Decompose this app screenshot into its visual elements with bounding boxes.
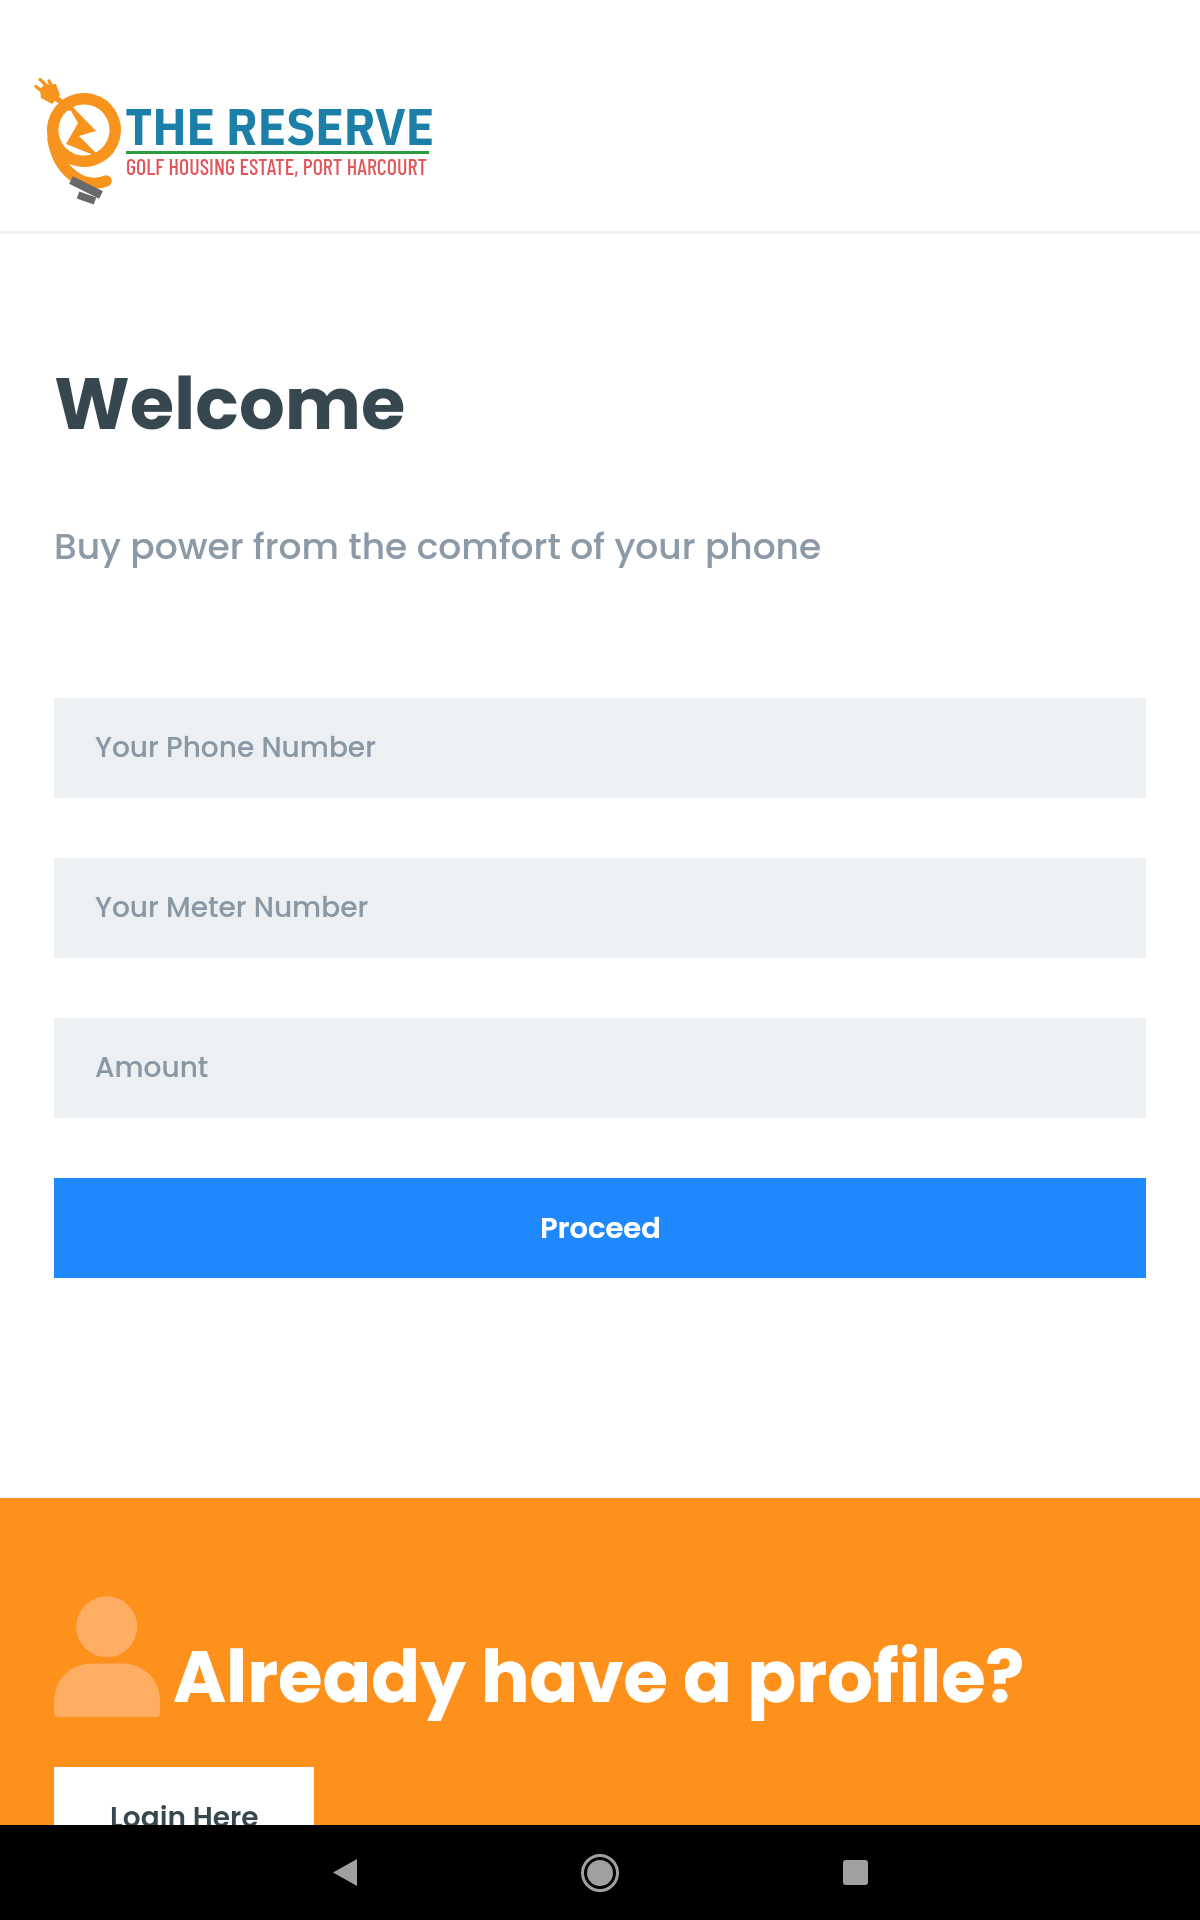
button[interactable]: Amount	[54, 1018, 1146, 1118]
staticText: Welcome	[54, 353, 406, 454]
button[interactable]: Back	[297, 1825, 392, 1920]
staticText: Your Meter Number	[95, 888, 369, 927]
button[interactable]: Proceed	[54, 1178, 1146, 1278]
button[interactable]: Home	[552, 1825, 647, 1920]
staticText: Login Here	[110, 1798, 259, 1837]
staticText: Your Phone Number	[95, 728, 376, 767]
staticText: Amount	[95, 1048, 209, 1087]
staticText: Buy power from the comfort of your phone	[54, 521, 822, 571]
staticText: Already have a profile?	[173, 1626, 1025, 1727]
button[interactable]: Recent apps	[808, 1825, 903, 1920]
button[interactable]: Login Here	[54, 1767, 314, 1867]
staticText: GOLF HOUSING ESTATE, PORT HARCOURT	[126, 153, 428, 179]
button[interactable]: Your Phone Number	[54, 698, 1146, 798]
staticText: THE RESERVE	[125, 92, 435, 160]
staticText: Proceed	[540, 1208, 661, 1249]
button[interactable]: Your Meter Number	[54, 858, 1146, 958]
